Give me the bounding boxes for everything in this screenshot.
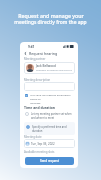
staticText: Request and manage your bbox=[18, 12, 84, 19]
staticText: Time and duration bbox=[24, 105, 56, 110]
staticText: Specify a preferred time and bbox=[32, 125, 67, 129]
staticText: 9:41 bbox=[28, 45, 35, 49]
staticText: Send request bbox=[40, 159, 59, 163]
staticText: Also send me meeting preparation advice … bbox=[30, 93, 74, 101]
other: Pick date bbox=[26, 142, 29, 145]
staticText: Tue, Sep 06, 2022 bbox=[31, 142, 55, 146]
staticText: Let my meeting partner set when bbox=[31, 112, 72, 116]
staticText: Specialist at medical care Org.Ltd bbox=[36, 69, 72, 72]
staticText: duration bbox=[32, 129, 43, 133]
button[interactable]: Also send me meeting preparation advice … bbox=[25, 93, 74, 104]
staticText: meetings directly from the app bbox=[14, 19, 87, 26]
staticText: Request hearing bbox=[29, 51, 58, 56]
staticText: message bbox=[30, 101, 41, 104]
button[interactable]: Back bbox=[24, 50, 74, 57]
button[interactable]: Jack Bellwood bbox=[26, 62, 73, 74]
other: Back bbox=[24, 52, 27, 55]
button[interactable] bbox=[24, 82, 75, 91]
staticText: Meeting date bbox=[24, 135, 42, 139]
staticText: Jack Bellwood bbox=[36, 64, 56, 68]
staticText: Meeting description bbox=[24, 78, 51, 82]
staticText: Available meeting slots bbox=[24, 150, 55, 154]
staticText: Meeting partner bbox=[24, 57, 46, 61]
staticText: and where to meet bbox=[31, 116, 55, 120]
button[interactable]: Pick date bbox=[26, 139, 73, 148]
button[interactable]: Specify a preferred time and bbox=[24, 122, 75, 135]
button[interactable]: Send request bbox=[25, 157, 74, 165]
